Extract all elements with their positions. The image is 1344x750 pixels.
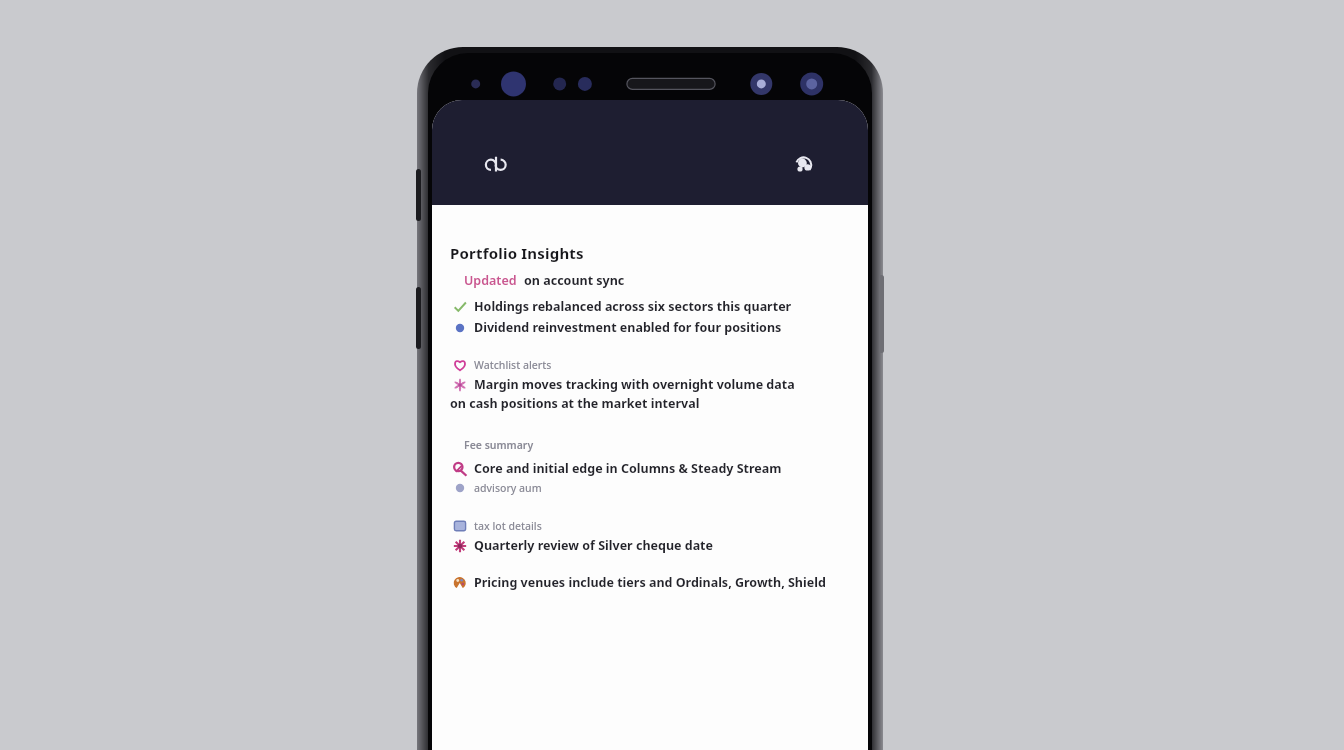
staticText: Watchlist alerts — [474, 358, 552, 372]
button[interactable]: Margin moves tracking with overnight vol… — [450, 376, 854, 393]
button[interactable]: Pricing venues include tiers and Ordinal… — [450, 574, 854, 591]
staticText: advisory aum — [474, 481, 542, 495]
staticText: on cash positions at the market interval — [450, 395, 700, 412]
staticText: Quarterly review of Silver cheque date — [474, 537, 714, 554]
button[interactable]: Dividend reinvestment enabled for four p… — [450, 319, 854, 336]
button[interactable]: Holdings rebalanced across six sectors t… — [450, 298, 854, 315]
button[interactable]: Settings — [784, 145, 824, 185]
staticText: Margin moves tracking with overnight vol… — [474, 376, 795, 393]
staticText: Holdings rebalanced across six sectors t… — [474, 298, 792, 315]
staticText: Pricing venues include tiers and Ordinal… — [474, 574, 826, 591]
staticText: Fee summary — [464, 438, 534, 452]
staticText: Updated — [464, 272, 524, 289]
staticText: Core and initial edge in Columns & Stead… — [474, 460, 782, 477]
button[interactable]: tax lot details — [450, 519, 854, 533]
button[interactable]: Navigate back — [476, 145, 516, 185]
button[interactable]: Core and initial edge in Columns & Stead… — [450, 460, 854, 477]
staticText: on account sync — [524, 272, 625, 289]
staticText: Dividend reinvestment enabled for four p… — [474, 319, 782, 336]
staticText: tax lot details — [474, 519, 542, 533]
button[interactable]: Watchlist alerts — [450, 358, 854, 372]
button[interactable]: Quarterly review of Silver cheque date — [450, 537, 854, 554]
button[interactable]: advisory aum — [450, 481, 854, 495]
staticText: Portfolio Insights — [450, 243, 584, 263]
